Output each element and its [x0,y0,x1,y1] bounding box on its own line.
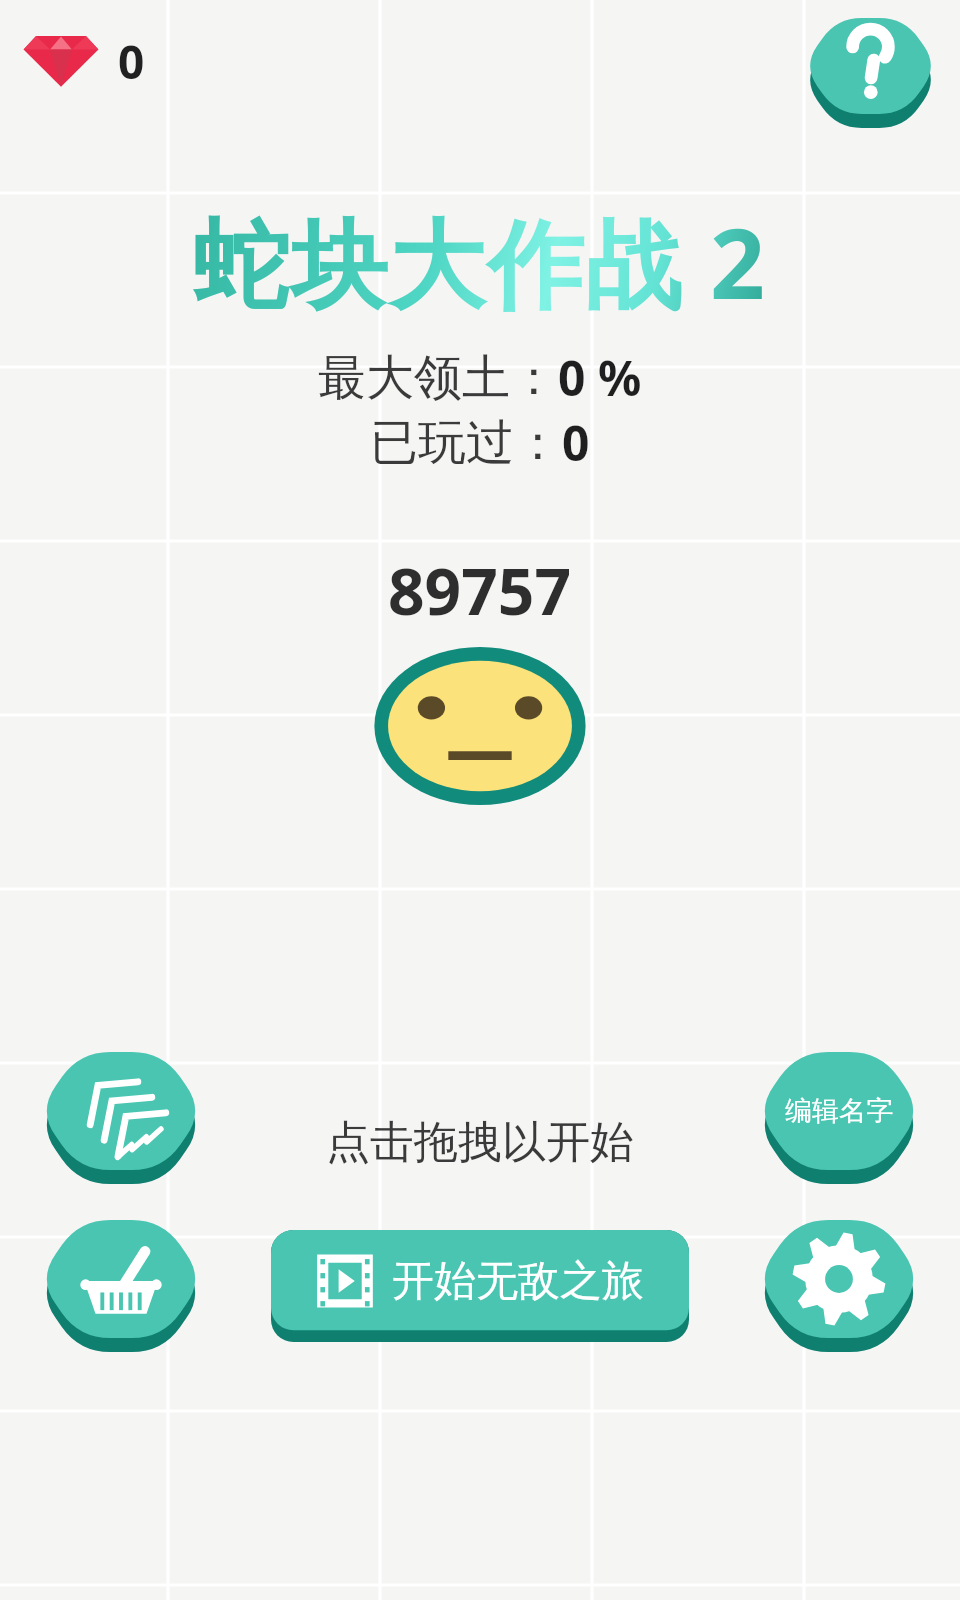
staticText: 最大领土： [318,348,558,408]
staticText: 0 % [558,345,642,410]
button[interactable]: Settings [756,1220,922,1352]
button[interactable]: Help [803,18,938,128]
staticText: 89757 [388,547,572,634]
button[interactable]: Leaderboard [38,1052,204,1184]
staticText: 蛇块大作战 2 [193,196,767,327]
staticText: 开始无敌之旅 [392,1255,644,1308]
staticText: 0 [118,30,145,93]
staticText: 0 [562,410,590,475]
button[interactable]: 开始无敌之旅 [271,1230,689,1342]
button[interactable]: 编辑名字 [756,1052,922,1184]
staticText: 编辑名字 [785,1094,893,1128]
button[interactable]: Shop [38,1220,204,1352]
staticText: 已玩过： [370,413,562,473]
staticText: 点击拖拽以开始 [326,1115,634,1170]
